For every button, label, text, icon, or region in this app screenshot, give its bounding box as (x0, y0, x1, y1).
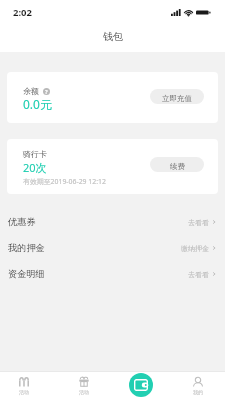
staticText: 去看看 (188, 270, 209, 279)
button[interactable]: 立即充值 (150, 89, 204, 104)
staticText: 0.0元 (23, 96, 52, 112)
staticText: 骑行卡 (23, 149, 47, 159)
staticText: 活动 (19, 389, 29, 395)
staticText: 有效期至2019-06-29 12:12 (23, 177, 106, 186)
button[interactable]: 资金明细 (0, 261, 225, 287)
button[interactable]: 续费 (150, 157, 204, 172)
button[interactable]: 优惠券 (0, 209, 225, 235)
staticText: 缴纳押金 (181, 244, 209, 253)
staticText: 续费 (170, 162, 185, 171)
staticText: 20次 (23, 160, 47, 175)
button[interactable]: 我的 (184, 371, 212, 400)
staticText: 余额 (23, 86, 39, 96)
staticText: 活动 (79, 389, 89, 395)
button[interactable]: 钱包 (129, 373, 153, 397)
button[interactable]: 我的押金 (0, 235, 225, 261)
staticText: 优惠券 (8, 216, 36, 228)
staticText: 立即充值 (162, 94, 192, 103)
staticText: 我的 (193, 389, 203, 395)
staticText: ? (45, 88, 48, 95)
button[interactable]: 活动 (70, 371, 98, 400)
staticText: 去看看 (188, 218, 209, 227)
staticText: 我的押金 (8, 242, 45, 254)
staticText: 资金明细 (8, 268, 45, 280)
staticText: 2:02 (13, 6, 32, 19)
staticText: 钱包 (103, 30, 123, 43)
button[interactable]: 活动 (10, 371, 38, 400)
button[interactable]: 余额说明 (43, 88, 50, 95)
